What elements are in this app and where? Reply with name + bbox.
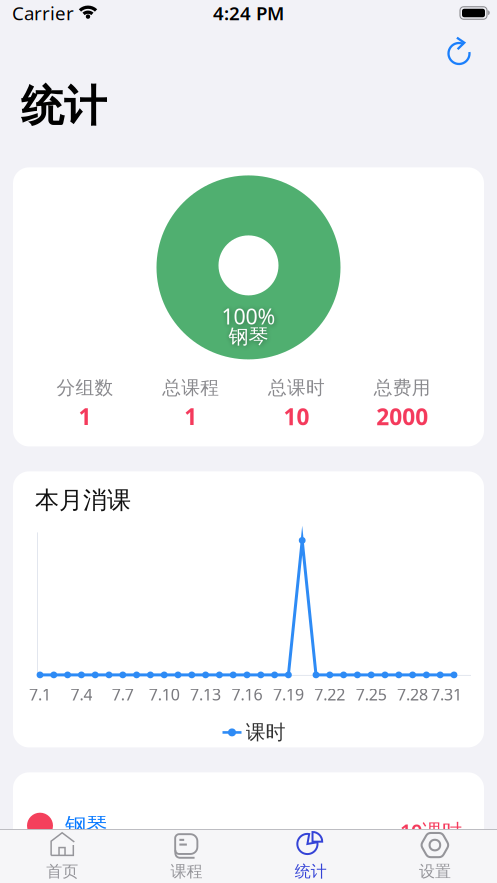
staticText: 7.1 <box>29 684 51 705</box>
staticText: 7.4 <box>70 684 92 705</box>
button[interactable]: 刷新 <box>445 37 473 67</box>
staticText: 10课时 <box>400 817 462 844</box>
staticText: 7.16 <box>231 684 262 705</box>
staticText: 统计 <box>21 80 107 132</box>
staticText: 7.13 <box>190 684 221 705</box>
staticText: 10 <box>283 401 309 431</box>
staticText: 2000 <box>376 401 428 431</box>
staticText: 总课时 <box>268 376 325 399</box>
staticText: 钢琴 <box>228 324 268 349</box>
staticText: 设置 <box>419 862 451 881</box>
staticText: 7.31 <box>431 684 462 705</box>
staticText: 1 <box>184 401 197 431</box>
staticText: 课程 <box>170 862 202 881</box>
staticText: 分组数 <box>56 376 113 399</box>
staticText: Carrier <box>12 1 74 25</box>
staticText: 7.19 <box>273 684 304 705</box>
staticText: 7.25 <box>356 684 387 705</box>
staticText: 100% <box>221 302 275 330</box>
button[interactable]: 钢琴 <box>13 812 484 839</box>
staticText: 7.22 <box>314 684 345 705</box>
staticText: 1 <box>78 401 91 431</box>
button[interactable]: 课程 <box>124 830 248 883</box>
staticText: 7.7 <box>112 684 134 705</box>
button[interactable]: 首页 <box>0 830 124 883</box>
staticText: 本月消课 <box>35 485 131 515</box>
staticText: 7.28 <box>397 684 428 705</box>
staticText: 总课程 <box>162 376 219 399</box>
staticText: 4:24 PM <box>213 1 284 25</box>
staticText: 总费用 <box>374 376 431 399</box>
staticText: 课时 <box>245 720 285 745</box>
staticText: 统计 <box>295 862 327 881</box>
button[interactable]: 统计 <box>248 830 373 883</box>
staticText: 首页 <box>46 862 78 881</box>
button[interactable]: 设置 <box>373 830 497 883</box>
staticText: 钢琴 <box>65 813 107 839</box>
staticText: 7.10 <box>149 684 180 705</box>
